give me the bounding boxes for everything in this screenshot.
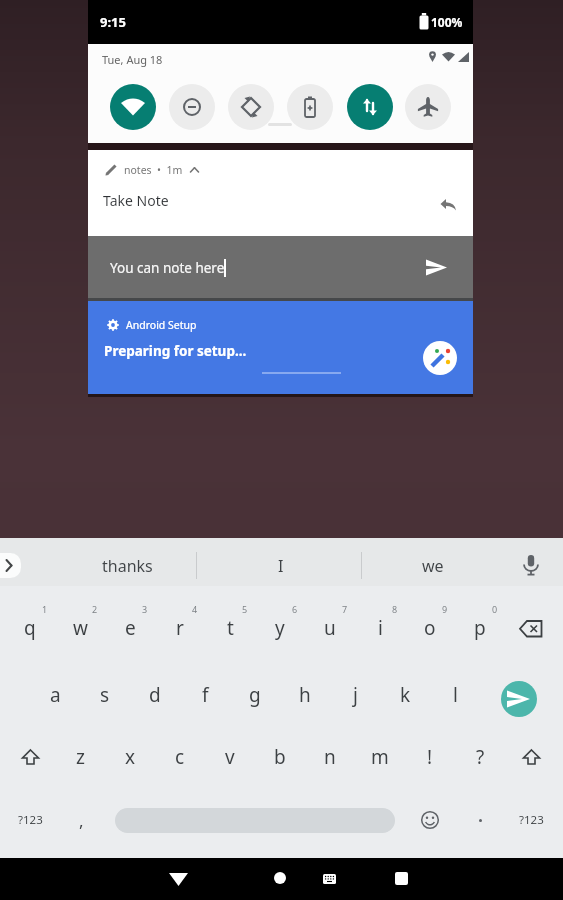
staticText: j bbox=[353, 682, 358, 708]
staticText: z bbox=[76, 744, 85, 770]
button[interactable]: v bbox=[208, 737, 252, 777]
button[interactable] bbox=[228, 84, 274, 130]
button[interactable]: p bbox=[458, 608, 502, 648]
button[interactable]: ?123 bbox=[8, 802, 52, 838]
button[interactable] bbox=[88, 150, 473, 236]
button[interactable] bbox=[169, 84, 215, 130]
staticText: r bbox=[176, 615, 184, 641]
button[interactable]: ! bbox=[408, 737, 452, 777]
button[interactable]: t bbox=[208, 608, 252, 648]
staticText: e bbox=[125, 615, 136, 641]
button[interactable]: a bbox=[33, 675, 77, 715]
staticText: Tue, Aug 18 bbox=[102, 52, 163, 67]
staticText: c bbox=[175, 744, 185, 770]
button[interactable]: u bbox=[308, 608, 352, 648]
button[interactable]: j bbox=[333, 675, 377, 715]
button[interactable] bbox=[479, 819, 482, 822]
button[interactable] bbox=[274, 872, 286, 884]
button[interactable] bbox=[0, 553, 21, 578]
staticText: f bbox=[202, 682, 209, 708]
button[interactable]: l bbox=[433, 675, 477, 715]
staticText: p bbox=[474, 615, 486, 641]
button[interactable] bbox=[501, 681, 537, 717]
button[interactable]: q bbox=[8, 608, 52, 648]
staticText: 6 bbox=[292, 603, 298, 615]
button[interactable]: h bbox=[283, 675, 327, 715]
staticText: a bbox=[50, 682, 61, 708]
staticText: thanks bbox=[102, 555, 153, 577]
button[interactable] bbox=[110, 84, 156, 130]
staticText: 4 bbox=[192, 603, 198, 615]
button[interactable]: z bbox=[58, 737, 102, 777]
staticText: ! bbox=[427, 744, 433, 770]
button[interactable]: c bbox=[158, 737, 202, 777]
button[interactable]: b bbox=[258, 737, 302, 777]
button[interactable]: o bbox=[408, 608, 452, 648]
staticText: 5 bbox=[242, 603, 248, 615]
button[interactable] bbox=[405, 84, 451, 130]
button[interactable]: thanks bbox=[47, 548, 207, 584]
button[interactable] bbox=[519, 620, 544, 638]
button[interactable]: ? bbox=[458, 737, 502, 777]
staticText: d bbox=[149, 682, 161, 708]
staticText: b bbox=[274, 744, 286, 770]
button[interactable]: i bbox=[358, 608, 402, 648]
staticText: x bbox=[125, 744, 136, 770]
staticText: s bbox=[100, 682, 110, 708]
staticText: y bbox=[275, 615, 285, 641]
staticText: 100% bbox=[431, 14, 463, 30]
staticText: Take Note bbox=[103, 191, 169, 209]
staticText: we bbox=[422, 555, 444, 577]
button[interactable] bbox=[426, 259, 447, 276]
staticText: m bbox=[371, 744, 389, 770]
button[interactable]: g bbox=[233, 675, 277, 715]
staticText: u bbox=[324, 615, 336, 641]
button[interactable]: s bbox=[83, 675, 127, 715]
staticText: notes • 1m bbox=[124, 163, 183, 177]
button[interactable]: y bbox=[258, 608, 302, 648]
button[interactable] bbox=[347, 84, 393, 130]
button[interactable]: n bbox=[308, 737, 352, 777]
staticText: q bbox=[24, 615, 36, 641]
staticText: 9 bbox=[442, 603, 448, 615]
button[interactable] bbox=[169, 873, 188, 886]
button[interactable]: I bbox=[201, 548, 361, 584]
button[interactable] bbox=[88, 301, 473, 394]
button[interactable]: d bbox=[133, 675, 177, 715]
staticText: , bbox=[79, 809, 84, 832]
button[interactable]: r bbox=[158, 608, 202, 648]
button[interactable]: f bbox=[183, 675, 227, 715]
staticText: ?123 bbox=[519, 812, 544, 828]
button[interactable]: k bbox=[383, 675, 427, 715]
button[interactable] bbox=[420, 810, 440, 830]
button[interactable]: we bbox=[353, 548, 513, 584]
staticText: w bbox=[73, 615, 88, 641]
staticText: g bbox=[249, 682, 261, 708]
staticText: 0 bbox=[492, 603, 498, 615]
staticText: v bbox=[225, 744, 235, 770]
button[interactable] bbox=[521, 554, 541, 578]
button[interactable]: m bbox=[358, 737, 402, 777]
button[interactable] bbox=[395, 872, 408, 885]
staticText: 3 bbox=[142, 603, 148, 615]
staticText: l bbox=[453, 682, 458, 708]
staticText: You can note here bbox=[110, 259, 225, 277]
button[interactable]: e bbox=[108, 608, 152, 648]
button[interactable]: , bbox=[59, 800, 103, 840]
staticText: 1 bbox=[42, 603, 48, 615]
button[interactable]: w bbox=[58, 608, 102, 648]
button[interactable] bbox=[21, 749, 40, 765]
staticText: o bbox=[424, 615, 436, 641]
button[interactable] bbox=[323, 874, 336, 884]
staticText: t bbox=[227, 615, 234, 641]
staticText: Android Setup bbox=[126, 318, 197, 332]
staticText: i bbox=[378, 615, 383, 641]
button[interactable] bbox=[287, 84, 333, 130]
button[interactable] bbox=[88, 236, 473, 298]
button[interactable]: x bbox=[108, 737, 152, 777]
button[interactable]: ?123 bbox=[509, 802, 553, 838]
button[interactable] bbox=[522, 749, 541, 765]
staticText: 9:15 bbox=[100, 13, 126, 31]
button[interactable] bbox=[423, 341, 457, 375]
button[interactable] bbox=[115, 808, 395, 833]
